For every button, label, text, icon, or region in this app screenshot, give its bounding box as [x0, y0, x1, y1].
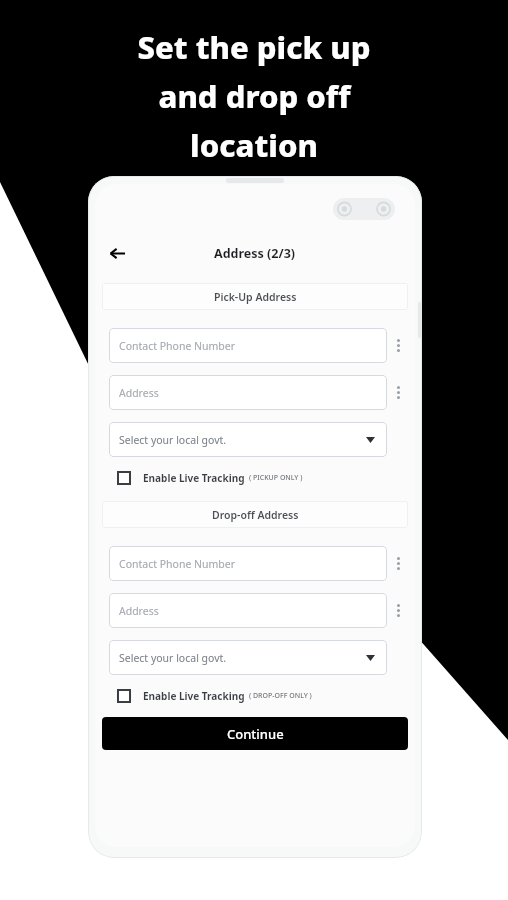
button[interactable]: Enable Live Tracking — [117, 689, 405, 703]
staticText: Enable Live Tracking — [143, 471, 245, 485]
button[interactable]: More options — [387, 546, 409, 581]
staticText: ( DROP-OFF ONLY ) — [249, 691, 312, 701]
staticText: Set the pick up — [137, 26, 371, 68]
button[interactable]: Contact Phone Number — [109, 328, 387, 363]
staticText: Drop-off Address — [212, 508, 299, 522]
button[interactable]: Continue — [102, 717, 408, 750]
staticText: Continue — [227, 725, 284, 743]
staticText: ( PICKUP ONLY ) — [249, 473, 303, 483]
button[interactable]: Enable Live Tracking — [117, 471, 405, 485]
button[interactable]: Back — [102, 238, 132, 268]
staticText: and drop off — [158, 75, 351, 117]
button[interactable]: Drop-off Address — [102, 501, 408, 528]
staticText: Pick-Up Address — [214, 290, 297, 304]
staticText: Contact Phone Number — [119, 557, 236, 571]
staticText: Address (2/3) — [214, 245, 296, 262]
staticText: Address — [119, 386, 159, 400]
button[interactable]: More options — [387, 593, 409, 628]
button[interactable]: More options — [387, 375, 409, 410]
button[interactable]: Address — [109, 375, 387, 410]
button[interactable]: More options — [387, 328, 409, 363]
staticText: location — [190, 124, 318, 166]
button[interactable]: Select your local govt. — [109, 640, 387, 675]
staticText: Select your local govt. — [119, 433, 227, 447]
staticText: Address — [119, 604, 159, 618]
staticText: Select your local govt. — [119, 651, 227, 665]
button[interactable]: Select your local govt. — [109, 422, 387, 457]
button[interactable]: Pick-Up Address — [102, 283, 408, 310]
button[interactable]: Address — [109, 593, 387, 628]
staticText: Enable Live Tracking — [143, 689, 245, 703]
button[interactable]: Contact Phone Number — [109, 546, 387, 581]
staticText: Contact Phone Number — [119, 339, 236, 353]
